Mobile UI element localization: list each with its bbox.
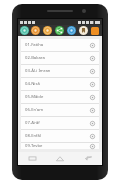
other: Options xyxy=(90,69,95,74)
other: Options xyxy=(90,56,95,61)
button[interactable]: 06-En'am xyxy=(21,104,99,116)
button[interactable]: Prayer times xyxy=(31,25,40,36)
button[interactable]: 09-Tevbe xyxy=(21,143,99,149)
button[interactable]: 05-Mâide xyxy=(21,91,99,103)
staticText: 07-A'râf xyxy=(25,120,90,126)
button[interactable]: 08-Enfâl xyxy=(21,130,99,142)
other: Options xyxy=(90,134,95,139)
button[interactable]: Tasbih xyxy=(42,25,52,36)
staticText: 06-En'am xyxy=(25,107,90,113)
staticText: 05-Mâide xyxy=(25,94,90,100)
button[interactable]: Back xyxy=(74,152,102,165)
staticText: 09-Tevbe xyxy=(25,143,90,149)
button[interactable]: 07-A'râf xyxy=(21,117,99,129)
staticText: 03-Âl-i İmran xyxy=(25,68,90,74)
other: Options xyxy=(90,82,95,87)
button[interactable]: 04-Nisâ xyxy=(21,78,99,90)
other: Options xyxy=(90,121,95,126)
staticText: 02-Bakara xyxy=(25,55,90,61)
button[interactable]: 03-Âl-i İmran xyxy=(21,65,99,77)
other: Options xyxy=(90,108,95,113)
button[interactable]: Home xyxy=(46,152,74,165)
button[interactable]: 02-Bakara xyxy=(21,52,99,64)
other: Options xyxy=(90,43,95,48)
other: Options xyxy=(90,95,95,100)
button[interactable]: Compass xyxy=(20,25,29,36)
button[interactable]: Recent apps xyxy=(18,152,46,165)
button[interactable]: 01-Fatiha xyxy=(21,39,99,51)
staticText: 08-Enfâl xyxy=(25,133,90,139)
staticText: 04-Nisâ xyxy=(25,81,90,87)
staticText: 01-Fatiha xyxy=(25,42,90,48)
button[interactable]: More xyxy=(90,25,100,36)
button[interactable]: Search xyxy=(66,25,76,36)
button[interactable]: Share xyxy=(54,25,64,36)
other: Options xyxy=(90,144,95,149)
button[interactable]: Bookmarks xyxy=(78,25,88,36)
